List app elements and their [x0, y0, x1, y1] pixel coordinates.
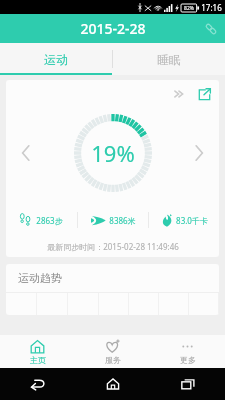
- staticText: 82%: [184, 5, 194, 12]
- button[interactable]: 83.0千卡: [149, 205, 219, 235]
- button[interactable]: 更多: [150, 335, 225, 368]
- staticText: 2863步: [36, 215, 63, 226]
- button[interactable]: Expand: [169, 84, 189, 104]
- button[interactable]: 服务: [75, 335, 150, 368]
- button[interactable]: Back: [0, 368, 75, 400]
- button[interactable]: Recent apps: [150, 368, 225, 400]
- staticText: 运动: [44, 52, 68, 67]
- button[interactable]: 8386米: [78, 205, 148, 235]
- button[interactable]: Next day: [185, 139, 213, 167]
- staticText: 运动趋势: [18, 271, 62, 285]
- staticText: 2015-2-28: [80, 19, 146, 38]
- button[interactable]: Share: [194, 84, 214, 104]
- button[interactable]: 主页: [0, 335, 75, 368]
- button[interactable]: Home: [75, 368, 150, 400]
- staticText: 睡眠: [157, 52, 181, 67]
- staticText: 更多: [180, 355, 196, 365]
- staticText: 19%: [91, 138, 135, 168]
- button[interactable]: 睡眠: [113, 43, 225, 75]
- button[interactable]: 运动: [0, 43, 112, 75]
- staticText: 最新同步时间：2015-02-28 11:49:46: [47, 241, 179, 252]
- staticText: 8386米: [109, 215, 136, 226]
- staticText: 服务: [105, 355, 121, 365]
- staticText: 17:16: [201, 2, 222, 13]
- staticText: 83.0千卡: [176, 215, 208, 226]
- button[interactable]: 2863步: [6, 205, 77, 235]
- button[interactable]: Previous day: [12, 139, 40, 167]
- staticText: 主页: [30, 355, 46, 365]
- button[interactable]: Link device: [196, 14, 225, 43]
